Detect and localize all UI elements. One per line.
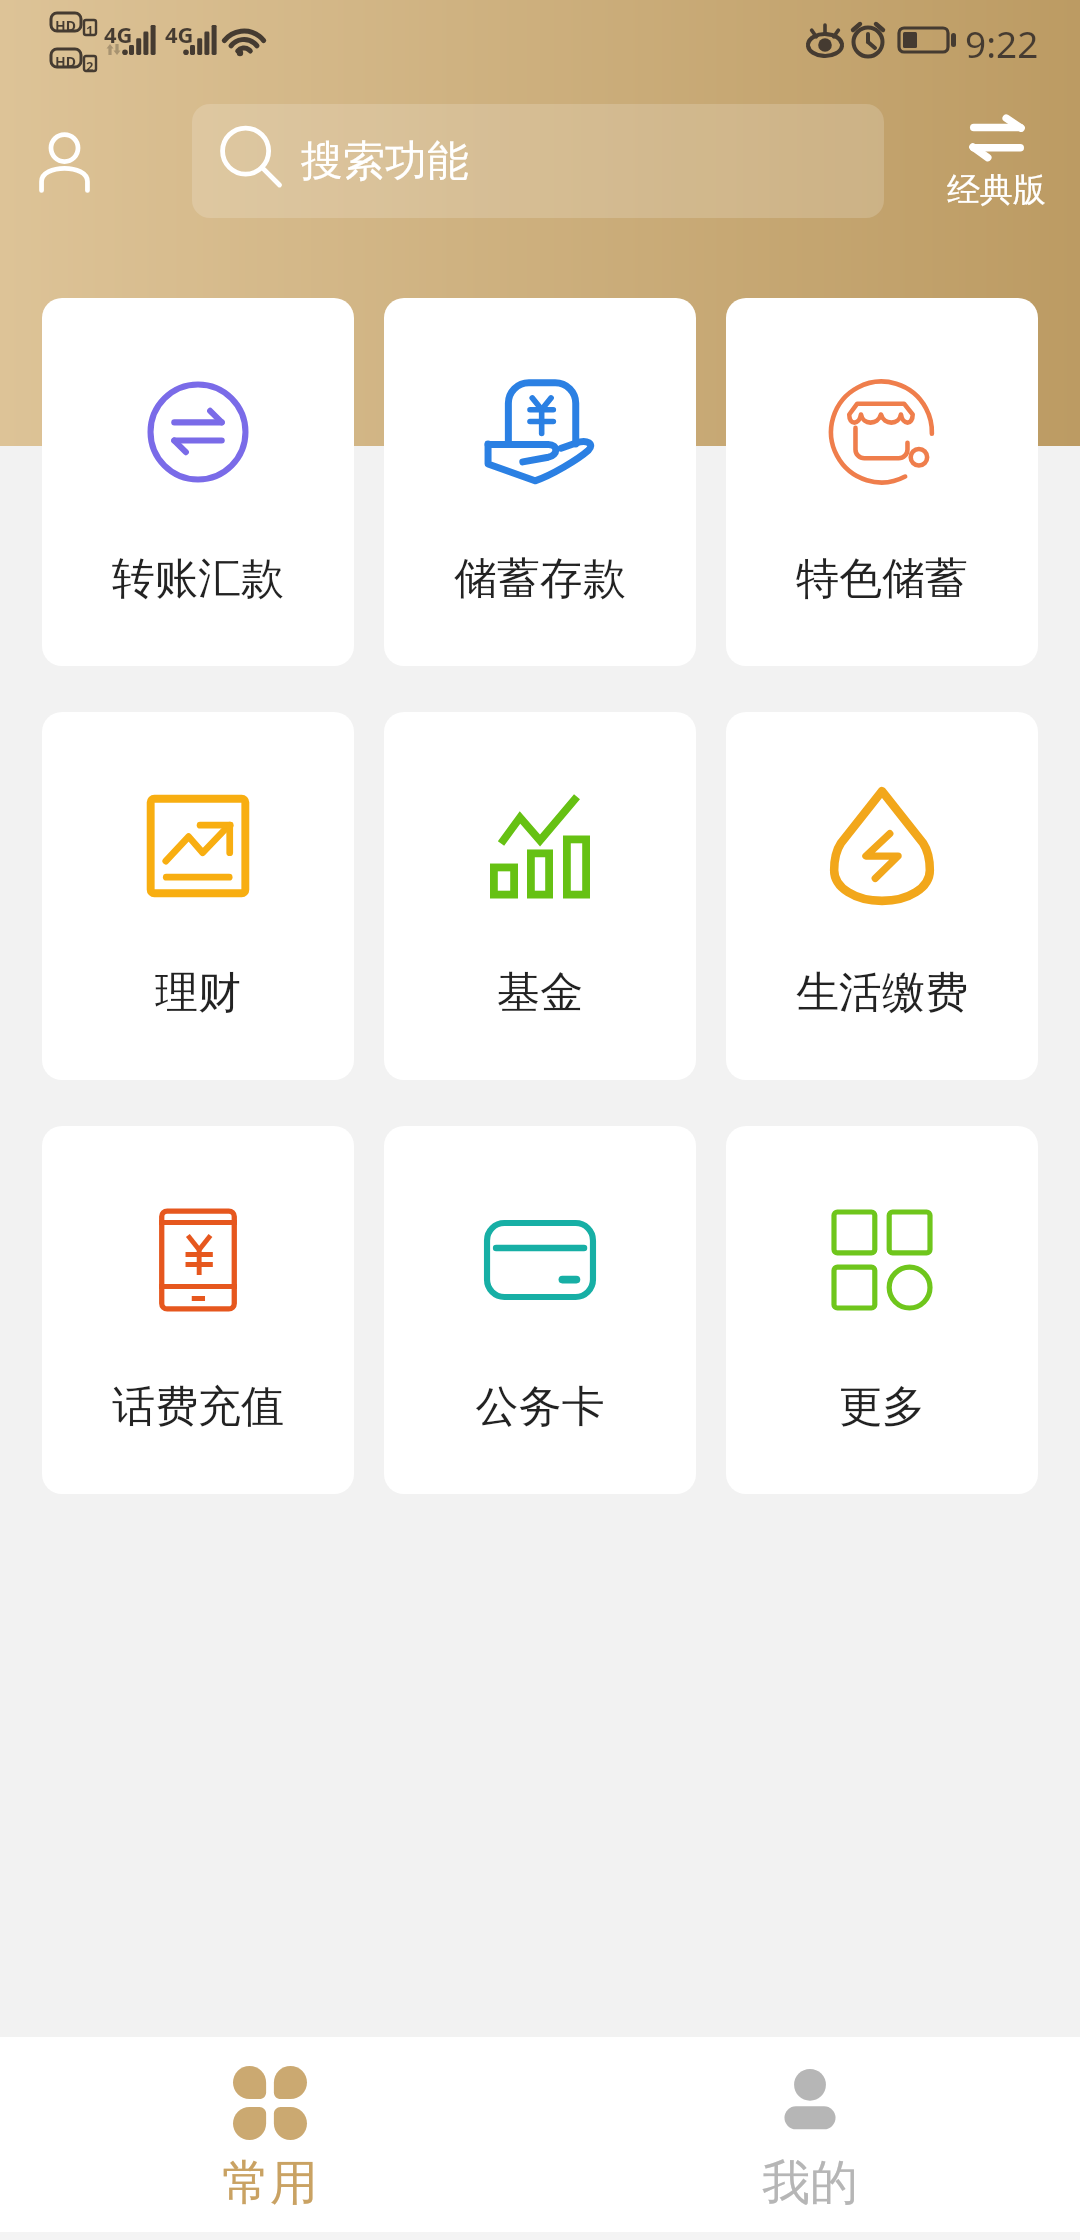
staticText: 基金 — [384, 966, 696, 1020]
staticText: 生活缴费 — [726, 966, 1038, 1020]
staticText: 1 — [86, 21, 94, 39]
button[interactable]: 特色储蓄 — [726, 298, 1038, 666]
staticText: 我的 — [762, 2153, 858, 2213]
staticText: 更多 — [726, 1380, 1038, 1434]
button[interactable]: 理财 — [42, 712, 354, 1080]
staticText: 理财 — [42, 966, 354, 1020]
button[interactable]: 搜索功能 — [192, 104, 884, 218]
button[interactable]: 基金 — [384, 712, 696, 1080]
staticText: 储蓄存款 — [384, 552, 696, 606]
staticText: 搜索功能 — [301, 135, 469, 188]
staticText: 特色储蓄 — [726, 552, 1038, 606]
staticText: 转账汇款 — [42, 552, 354, 606]
button[interactable]: 生活缴费 — [726, 712, 1038, 1080]
button[interactable]: 经典版 — [930, 100, 1062, 228]
button[interactable]: 我的 — [540, 2037, 1080, 2232]
button[interactable]: 常用 — [0, 2037, 540, 2232]
button[interactable]: 更多 — [726, 1126, 1038, 1494]
staticText: HD — [55, 16, 76, 35]
button[interactable]: 话费充值 — [42, 1126, 354, 1494]
staticText: 经典版 — [947, 169, 1046, 211]
button[interactable]: 公务卡 — [384, 1126, 696, 1494]
staticText: 常用 — [222, 2153, 318, 2213]
staticText: 4G — [165, 19, 194, 49]
staticText: 公务卡 — [384, 1380, 696, 1434]
staticText: 4G — [104, 19, 133, 49]
staticText: 9:22 — [965, 18, 1039, 68]
button[interactable]: Profile — [0, 99, 124, 223]
button[interactable]: 储蓄存款 — [384, 298, 696, 666]
staticText: 话费充值 — [42, 1380, 354, 1434]
staticText: HD — [55, 52, 76, 71]
button[interactable]: 转账汇款 — [42, 298, 354, 666]
staticText: 2 — [86, 57, 94, 75]
